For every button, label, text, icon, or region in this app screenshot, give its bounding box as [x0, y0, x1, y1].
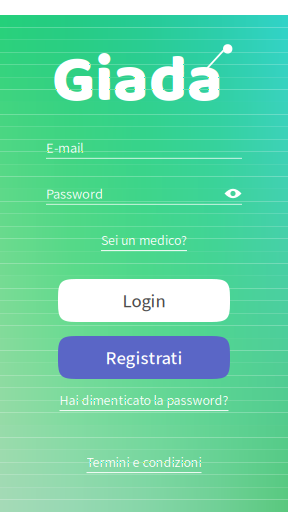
staticText: Giada — [52, 30, 223, 134]
staticText: Hai dimenticato la password? — [59, 391, 228, 409]
button[interactable]: Sei un medico? — [101, 231, 187, 251]
button[interactable]: Login — [58, 279, 230, 322]
button[interactable]: Termini e condizioni — [86, 453, 201, 473]
staticText: Sei un medico? — [101, 231, 187, 249]
button[interactable]: Hai dimenticato la password? — [59, 391, 228, 411]
staticText: Termini e condizioni — [86, 453, 201, 471]
staticText: Registrati — [105, 345, 182, 370]
button[interactable]: Registrati — [58, 336, 230, 379]
staticText: Login — [122, 288, 165, 313]
staticText: Password — [46, 184, 103, 203]
staticText: E-mail — [46, 138, 84, 157]
button[interactable]: Show password — [216, 187, 242, 199]
